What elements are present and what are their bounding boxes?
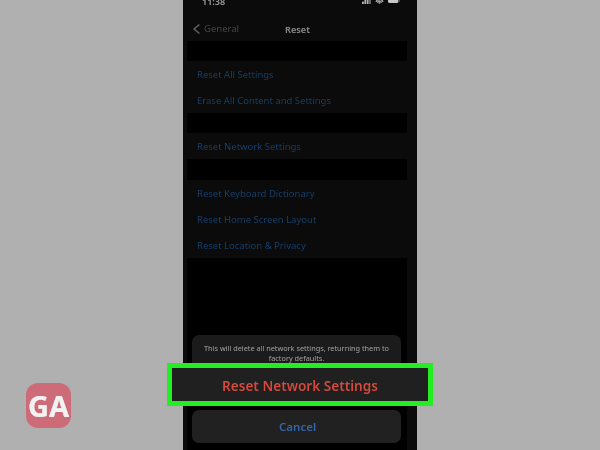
button[interactable]: Reset Network Settings bbox=[172, 368, 428, 401]
staticText: GA bbox=[28, 386, 70, 425]
staticText: Cancel bbox=[279, 419, 317, 435]
button[interactable]: Erase All Content and Settings bbox=[183, 87, 417, 113]
button[interactable]: Reset Keyboard Dictionary bbox=[183, 180, 417, 206]
button[interactable]: Reset All Settings bbox=[183, 61, 417, 87]
staticText: Reset Network Settings bbox=[197, 140, 301, 153]
staticText: Reset Home Screen Layout bbox=[197, 213, 317, 226]
button[interactable]: General bbox=[193, 22, 240, 35]
staticText: This will delete all network settings, r… bbox=[200, 343, 393, 363]
button[interactable]: Cancel bbox=[192, 410, 401, 443]
staticText: Reset All Settings bbox=[197, 68, 274, 81]
staticText: Reset bbox=[285, 23, 310, 36]
button[interactable]: Reset Network Settings bbox=[183, 133, 417, 159]
staticText: 11:38 bbox=[202, 0, 226, 7]
button[interactable]: Reset Home Screen Layout bbox=[183, 206, 417, 232]
staticText: General bbox=[204, 22, 240, 35]
button[interactable]: GA logo bbox=[26, 383, 71, 428]
staticText: Erase All Content and Settings bbox=[197, 94, 332, 107]
button[interactable]: Reset Location & Privacy bbox=[183, 232, 417, 258]
staticText: Reset Network Settings bbox=[222, 376, 378, 395]
staticText: Reset Keyboard Dictionary bbox=[197, 187, 315, 200]
staticText: Reset Location & Privacy bbox=[197, 239, 306, 252]
